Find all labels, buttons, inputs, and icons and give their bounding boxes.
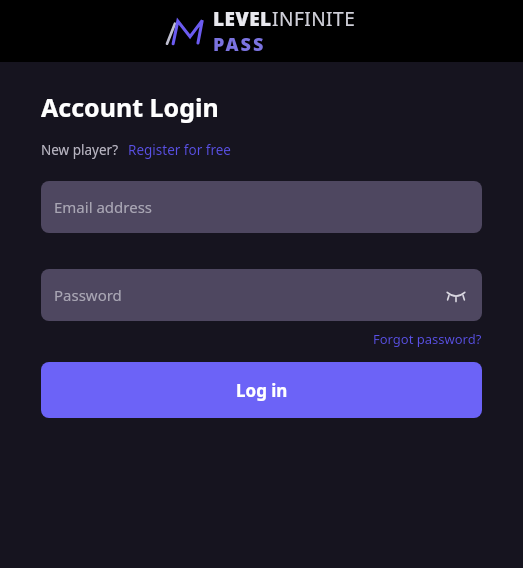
button[interactable]: Show password	[442, 281, 470, 309]
staticText: LEVEL	[213, 6, 272, 32]
button[interactable]: Register for free	[128, 141, 231, 159]
staticText: New player?	[41, 141, 119, 159]
staticText: PASS	[213, 32, 266, 57]
button[interactable]: Password	[41, 269, 482, 321]
button[interactable]: Forgot password?	[373, 330, 482, 348]
staticText: Log in	[236, 379, 288, 402]
staticText: Password	[54, 285, 122, 305]
staticText: Account Login	[41, 90, 219, 124]
staticText: Register for free	[128, 141, 231, 159]
staticText: Forgot password?	[373, 330, 482, 348]
staticText: INFINITE	[272, 6, 356, 32]
staticText: Email address	[54, 197, 153, 217]
button[interactable]: Log in	[41, 362, 482, 418]
button[interactable]: Email address	[41, 181, 482, 233]
